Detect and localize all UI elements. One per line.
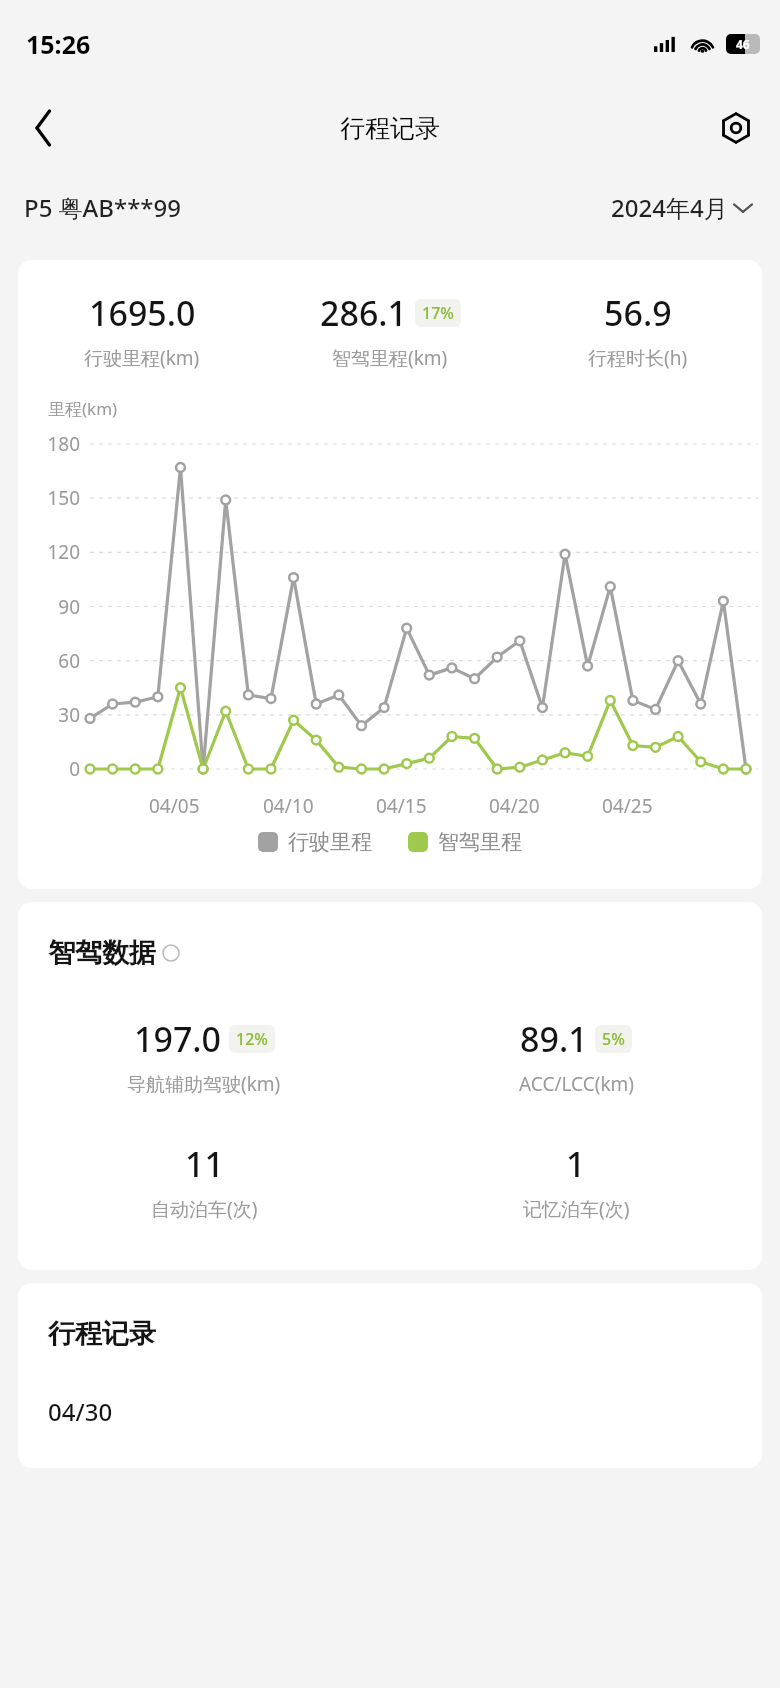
staticText: 行程记录 — [48, 1317, 156, 1351]
staticText: 智驾数据 — [48, 936, 156, 970]
staticText: 11 — [185, 1141, 224, 1187]
staticText: 04/15 — [376, 793, 427, 819]
button[interactable]: Settings — [708, 100, 764, 156]
staticText: 89.1 — [520, 1016, 588, 1062]
staticText: 记忆泊车(次) — [523, 1196, 630, 1222]
button[interactable]: 智驾数据 — [18, 902, 762, 1270]
staticText: 180 — [24, 431, 80, 457]
staticText: 1 — [566, 1141, 586, 1187]
staticText: 04/30 — [48, 1395, 113, 1428]
staticText: 90 — [24, 594, 80, 620]
staticText: 智驾里程 — [438, 829, 522, 855]
staticText: 行程记录 — [340, 113, 440, 144]
button[interactable]: 行程记录 — [18, 1283, 762, 1468]
staticText: 197.0 — [134, 1016, 222, 1062]
staticText: 17% — [422, 302, 454, 324]
staticText: 里程(km) — [48, 397, 118, 420]
staticText: 46 — [736, 36, 750, 52]
staticText: 自动泊车(次) — [151, 1196, 258, 1222]
staticText: 04/25 — [602, 793, 653, 819]
staticText: 导航辅助驾驶(km) — [127, 1071, 281, 1097]
staticText: 1695.0 — [89, 290, 196, 336]
staticText: 2024年4月 — [611, 191, 728, 224]
staticText: 5% — [602, 1028, 625, 1050]
staticText: 150 — [24, 485, 80, 511]
staticText: 120 — [24, 539, 80, 565]
button[interactable]: 2024年4月 — [607, 187, 756, 228]
staticText: 04/20 — [489, 793, 540, 819]
staticText: 智驾里程(km) — [332, 345, 448, 371]
staticText: 286.1 — [320, 290, 408, 336]
staticText: 30 — [24, 702, 80, 728]
staticText: 12% — [236, 1028, 268, 1050]
staticText: 行程时长(h) — [588, 345, 688, 371]
staticText: ACC/LCC(km) — [519, 1071, 634, 1097]
staticText: 56.9 — [604, 290, 672, 336]
staticText: 行驶里程 — [288, 829, 372, 855]
staticText: 60 — [24, 648, 80, 674]
staticText: 04/10 — [263, 793, 314, 819]
staticText: P5 粤AB***99 — [24, 191, 181, 224]
button[interactable]: 1695.0 — [18, 260, 762, 889]
staticText: 行驶里程(km) — [84, 345, 200, 371]
staticText: 15:26 — [26, 27, 91, 61]
staticText: 0 — [24, 756, 80, 782]
button[interactable]: Back — [16, 100, 72, 156]
staticText: 04/05 — [149, 793, 200, 819]
